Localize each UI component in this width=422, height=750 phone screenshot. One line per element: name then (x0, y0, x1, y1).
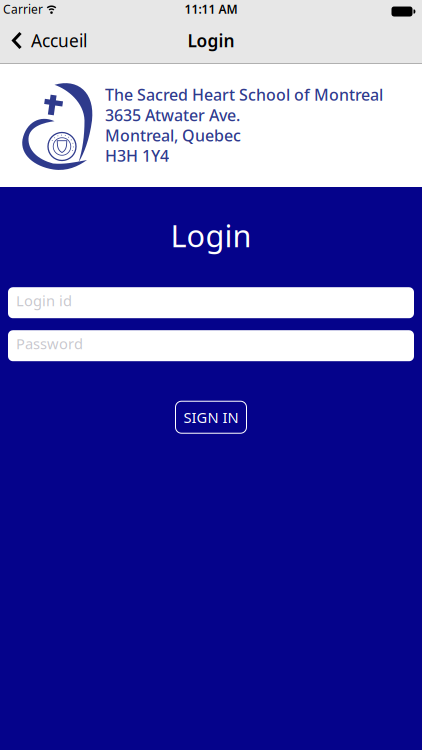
staticText: Login (187, 29, 234, 52)
staticText: SIGN IN (183, 407, 238, 427)
staticText: Montreal, Quebec (105, 125, 241, 146)
staticText: Password (16, 334, 83, 353)
staticText: Accueil (31, 29, 87, 52)
staticText: 11:11 AM (184, 1, 237, 17)
staticText: Carrier (3, 1, 43, 17)
staticText: Login id (16, 291, 72, 310)
button[interactable]: Accueil (0, 29, 87, 52)
staticText: H3H 1Y4 (105, 145, 169, 166)
button[interactable]: Login id (0, 287, 422, 318)
button[interactable]: Password (0, 330, 422, 361)
staticText: 3635 Atwater Ave. (105, 104, 240, 125)
staticText: Login (170, 215, 251, 256)
button[interactable]: SIGN IN (175, 401, 246, 433)
staticText: The Sacred Heart School of Montreal (105, 84, 383, 105)
